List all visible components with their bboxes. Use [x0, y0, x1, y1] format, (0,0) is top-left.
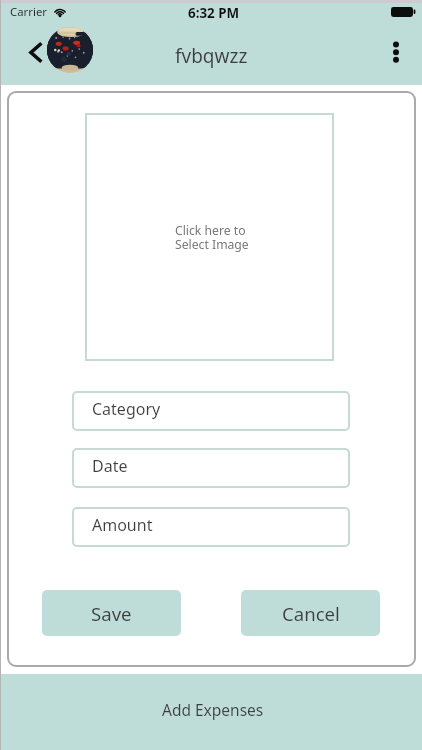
button[interactable]: Click here to Select Image — [85, 113, 334, 361]
button[interactable]: Add Expenses — [0, 674, 422, 750]
staticText: Click here to Select Image — [175, 222, 249, 253]
button[interactable]: Profile picture — [47, 27, 93, 73]
button[interactable]: Date — [72, 448, 350, 488]
button[interactable]: Save — [42, 590, 181, 636]
staticText: Add Expenses — [162, 699, 264, 720]
button[interactable]: Cancel — [241, 590, 380, 636]
staticText: Cancel — [282, 601, 340, 626]
button[interactable]: Category — [72, 391, 350, 431]
staticText: Date — [92, 455, 128, 477]
staticText: Save — [91, 601, 132, 626]
staticText: fvbqwzz — [175, 43, 248, 69]
staticText: Amount — [92, 514, 153, 536]
button[interactable]: Back — [22, 36, 50, 68]
button[interactable]: Amount — [72, 507, 350, 547]
staticText: Category — [92, 398, 161, 420]
staticText: 6:32 PM — [188, 4, 240, 22]
staticText: Carrier — [10, 4, 48, 20]
button[interactable]: More options — [382, 32, 410, 76]
